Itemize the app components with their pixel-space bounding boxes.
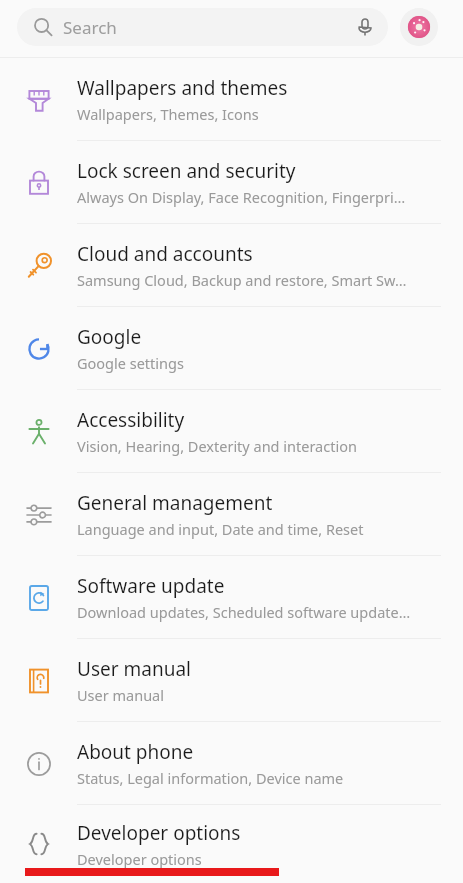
button[interactable]: Google (0, 307, 463, 390)
staticText: Always On Display, Face Recognition, Fin… (77, 187, 406, 207)
staticText: User manual (77, 656, 191, 682)
staticText: About phone (77, 739, 194, 765)
staticText: Google settings (77, 353, 184, 373)
staticText: Developer options (77, 820, 241, 846)
button[interactable]: Accessibility (0, 390, 463, 473)
staticText: Language and input, Date and time, Reset (77, 519, 364, 539)
staticText: Vision, Hearing, Dexterity and interacti… (77, 436, 357, 456)
staticText: Search (63, 16, 117, 39)
staticText: Wallpapers and themes (77, 75, 288, 101)
button[interactable]: Wallpapers and themes (0, 58, 463, 141)
button[interactable]: Cloud and accounts (0, 224, 463, 307)
button[interactable]: Account (400, 8, 438, 46)
staticText: General management (77, 490, 273, 516)
staticText: Download updates, Scheduled software upd… (77, 602, 411, 622)
button[interactable]: Software update (0, 556, 463, 639)
staticText: Google (77, 324, 142, 350)
button[interactable]: About phone (0, 722, 463, 805)
staticText: User manual (77, 685, 164, 705)
staticText: Cloud and accounts (77, 241, 253, 267)
button[interactable]: General management (0, 473, 463, 556)
staticText: Developer options (77, 849, 202, 869)
button[interactable]: Search (17, 8, 388, 46)
button[interactable]: Lock screen and security (0, 141, 463, 224)
staticText: Wallpapers, Themes, Icons (77, 104, 259, 124)
staticText: Software update (77, 573, 225, 599)
staticText: Lock screen and security (77, 158, 296, 184)
staticText: Status, Legal information, Device name (77, 768, 344, 788)
staticText: Samsung Cloud, Backup and restore, Smart… (77, 270, 407, 290)
button[interactable]: Developer options (0, 805, 463, 883)
button[interactable]: User manual (0, 639, 463, 722)
button[interactable]: Voice search (346, 8, 384, 46)
staticText: Accessibility (77, 407, 185, 433)
